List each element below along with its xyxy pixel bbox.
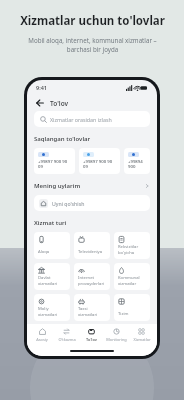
staticText: 9:41 bbox=[36, 84, 47, 91]
staticText: Taxsi xizmatlari bbox=[78, 306, 98, 317]
button[interactable]: Back bbox=[35, 95, 149, 111]
button[interactable]: Moliy xizmatlari bbox=[34, 294, 70, 321]
staticText: Rekvizitlar bo'yicha bbox=[118, 244, 139, 255]
button[interactable]: Televideniya bbox=[74, 232, 110, 259]
staticText: O'tkazma bbox=[58, 337, 76, 342]
button[interactable]: +99897 900 90 09 bbox=[79, 148, 120, 174]
staticText: To'lov bbox=[86, 337, 97, 342]
staticText: Mening uylarim bbox=[34, 182, 81, 190]
button[interactable]: Tizim bbox=[114, 294, 150, 321]
button[interactable]: Saqlangan to'lovlar bbox=[34, 134, 150, 144]
button[interactable]: Aloqa bbox=[34, 232, 70, 259]
button[interactable]: Asosiy bbox=[30, 324, 54, 346]
button[interactable]: Uyni qo'shish bbox=[34, 195, 150, 211]
button[interactable]: +99897 900 90 09 bbox=[34, 148, 75, 174]
staticText: Tizim bbox=[118, 311, 129, 317]
staticText: +99897 900 90 09 bbox=[83, 158, 116, 170]
button[interactable]: Monitoring bbox=[104, 324, 129, 346]
button[interactable]: Davlat xizmatlari bbox=[34, 263, 70, 290]
button[interactable]: Internet provayderlari bbox=[74, 263, 110, 290]
button[interactable]: Rekvizitlar bo'yicha bbox=[114, 232, 150, 259]
staticText: Asosiy bbox=[36, 337, 48, 342]
staticText: Davlat xizmatlari bbox=[38, 275, 58, 286]
button[interactable]: Kommunal xizmatlar bbox=[114, 263, 150, 290]
button[interactable]: Mening uylarim bbox=[34, 181, 150, 191]
button[interactable]: Xizmat turi bbox=[34, 218, 150, 228]
staticText: Aloqa bbox=[38, 249, 50, 255]
staticText: +99894 900 bbox=[128, 158, 146, 170]
staticText: Xizmat turi bbox=[34, 219, 67, 227]
staticText: Uyni qo'shish bbox=[52, 200, 85, 207]
staticText: Xizmatlar uchun to'lovlar bbox=[20, 13, 165, 29]
button[interactable]: O'tkazma bbox=[54, 324, 79, 346]
staticText: +99897 900 90 09 bbox=[38, 158, 71, 170]
staticText: Monitoring bbox=[106, 337, 127, 342]
staticText: Xizmatlar orasidan izlash bbox=[50, 116, 112, 123]
staticText: Moliy xizmatlari bbox=[38, 306, 58, 317]
staticText: Mobil aloqa, internet, kommunal xizmatla… bbox=[28, 36, 157, 54]
button[interactable]: Xizmatlar bbox=[129, 324, 154, 346]
button[interactable]: Taxsi xizmatlari bbox=[74, 294, 110, 321]
staticText: To'lov bbox=[50, 99, 69, 108]
staticText: Xizmatlar bbox=[133, 337, 151, 342]
staticText: Internet provayderlari bbox=[78, 275, 105, 286]
button[interactable]: Xizmatlar orasidan izlash bbox=[34, 111, 150, 127]
staticText: Kommunal xizmatlar bbox=[118, 275, 140, 286]
button[interactable]: Back bbox=[35, 98, 45, 108]
staticText: Televideniya bbox=[78, 249, 103, 255]
staticText: Saqlangan to'lovlar bbox=[34, 135, 91, 143]
button[interactable]: +99894 900 bbox=[124, 148, 150, 174]
button[interactable]: To'lov bbox=[79, 324, 104, 346]
